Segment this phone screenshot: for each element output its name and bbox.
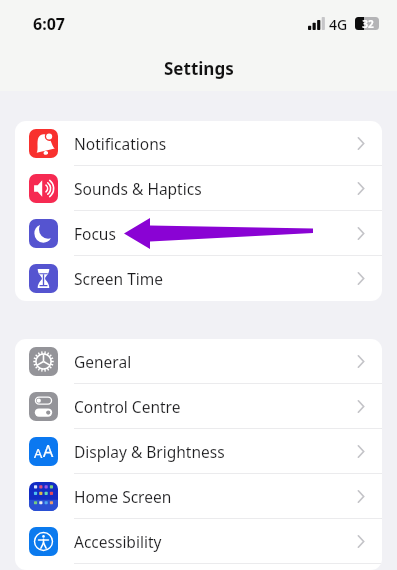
staticText: Notifications bbox=[74, 133, 167, 154]
button[interactable]: Sounds & Haptics bbox=[15, 166, 382, 211]
button[interactable]: Accessibility bbox=[15, 519, 382, 564]
button[interactable]: Notifications bbox=[15, 121, 382, 166]
staticText: Focus bbox=[74, 223, 116, 244]
staticText: A bbox=[34, 444, 43, 462]
button[interactable]: A bbox=[15, 429, 382, 474]
staticText: Accessibility bbox=[74, 531, 162, 552]
staticText: A bbox=[43, 440, 54, 462]
staticText: Home Screen bbox=[74, 486, 172, 507]
button[interactable]: Screen Time bbox=[15, 256, 382, 301]
staticText: Control Centre bbox=[74, 396, 181, 417]
button[interactable]: Control Centre bbox=[15, 384, 382, 429]
staticText: General bbox=[74, 351, 132, 372]
staticText: Sounds & Haptics bbox=[74, 178, 202, 199]
staticText: Settings bbox=[164, 57, 234, 80]
button[interactable]: Focus bbox=[15, 211, 382, 256]
button[interactable]: General bbox=[15, 339, 382, 384]
button[interactable]: Home Screen bbox=[15, 474, 382, 519]
staticText: Display & Brightness bbox=[74, 441, 225, 462]
staticText: 32 bbox=[362, 17, 374, 30]
staticText: 6:07 bbox=[33, 13, 65, 35]
staticText: 4G bbox=[329, 15, 348, 34]
staticText: Screen Time bbox=[74, 268, 163, 289]
